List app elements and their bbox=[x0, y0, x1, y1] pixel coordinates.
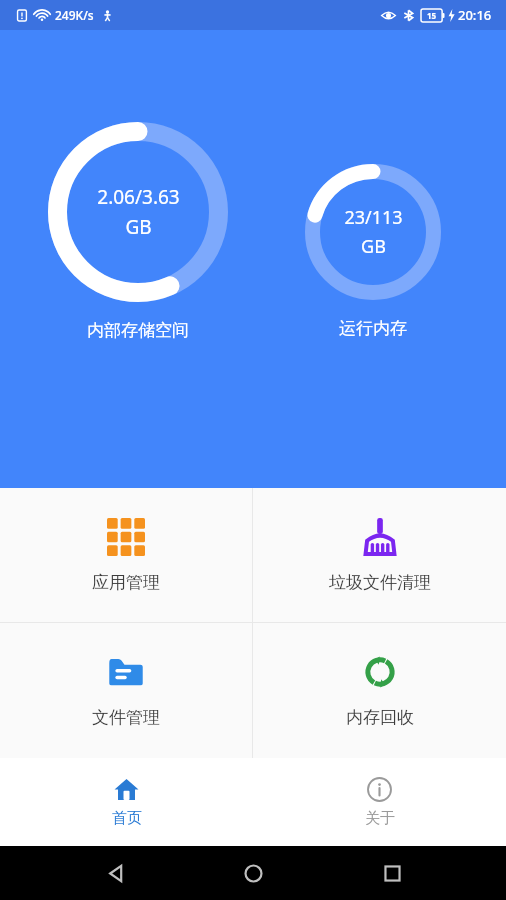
staticText: 15 bbox=[427, 10, 437, 21]
staticText: 249K/s bbox=[55, 7, 94, 23]
staticText: 首页 bbox=[112, 809, 142, 828]
staticText: 内存回收 bbox=[346, 707, 414, 728]
staticText: 文件管理 bbox=[92, 707, 160, 728]
staticText: 垃圾文件清理 bbox=[329, 572, 431, 593]
button[interactable]: 首页 bbox=[0, 758, 253, 846]
staticText: 运行内存 bbox=[339, 318, 407, 339]
button[interactable]: Home bbox=[229, 849, 277, 897]
staticText: 内部存储空间 bbox=[87, 320, 189, 341]
button[interactable]: 关于 bbox=[253, 758, 506, 846]
button[interactable]: 内存回收 bbox=[253, 623, 506, 758]
button[interactable]: 文件管理 bbox=[0, 623, 252, 758]
staticText: 20:16 bbox=[458, 6, 492, 24]
staticText: 23/113 bbox=[344, 205, 403, 230]
button[interactable]: 应用管理 bbox=[0, 488, 252, 622]
button[interactable]: Recents bbox=[368, 849, 416, 897]
button[interactable]: Back bbox=[91, 849, 139, 897]
staticText: 应用管理 bbox=[92, 572, 160, 593]
staticText: 关于 bbox=[365, 809, 395, 828]
staticText: GB bbox=[125, 214, 152, 240]
staticText: GB bbox=[361, 234, 386, 259]
button[interactable]: 垃圾文件清理 bbox=[253, 488, 506, 622]
staticText: 2.06/3.63 bbox=[97, 184, 180, 210]
